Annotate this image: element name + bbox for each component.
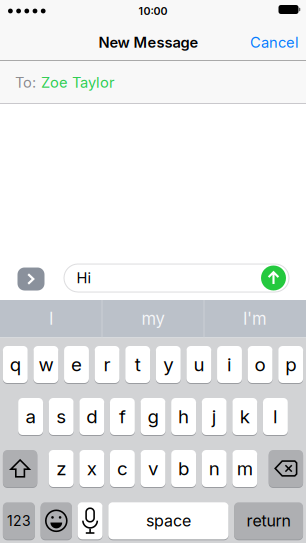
button[interactable] xyxy=(269,450,303,487)
staticText: u xyxy=(193,353,204,376)
staticText: h xyxy=(178,405,189,428)
button[interactable]: v xyxy=(141,450,165,487)
button[interactable]: y xyxy=(156,346,181,383)
button[interactable]: x xyxy=(79,450,104,487)
button[interactable]: f xyxy=(110,398,135,435)
staticText: r xyxy=(104,353,111,376)
button[interactable] xyxy=(78,502,102,539)
staticText: 123 xyxy=(7,512,31,529)
staticText: t xyxy=(135,353,141,376)
button[interactable]: z xyxy=(49,450,74,487)
staticText: I'm xyxy=(243,309,267,329)
button[interactable]: d xyxy=(79,398,104,435)
button[interactable]: h xyxy=(171,398,196,435)
staticText: x xyxy=(87,457,97,480)
staticText: New Message xyxy=(98,34,198,51)
staticText: k xyxy=(240,405,250,428)
button[interactable] xyxy=(17,267,44,290)
button[interactable]: r xyxy=(95,346,120,383)
staticText: e xyxy=(71,353,82,376)
button[interactable] xyxy=(261,265,286,290)
button[interactable]: g xyxy=(141,398,165,435)
button[interactable]: Cancel xyxy=(250,34,299,51)
button[interactable]: e xyxy=(64,346,89,383)
staticText: z xyxy=(56,457,66,480)
staticText: a xyxy=(26,405,36,428)
button[interactable]: b xyxy=(171,450,196,487)
staticText: To: xyxy=(15,74,36,91)
button[interactable]: return xyxy=(234,502,303,539)
staticText: g xyxy=(147,405,158,428)
staticText: v xyxy=(148,457,158,480)
button[interactable]: my xyxy=(103,300,203,337)
button[interactable]: k xyxy=(232,398,257,435)
button[interactable] xyxy=(3,450,37,487)
button[interactable]: j xyxy=(202,398,227,435)
button[interactable]: p xyxy=(278,346,303,383)
button[interactable]: m xyxy=(232,450,257,487)
button[interactable]: s xyxy=(49,398,74,435)
staticText: d xyxy=(86,405,97,428)
button[interactable]: w xyxy=(33,346,58,383)
button[interactable]: n xyxy=(202,450,227,487)
button[interactable]: l xyxy=(263,398,288,435)
staticText: j xyxy=(212,405,217,428)
staticText: i xyxy=(227,353,232,376)
staticText: space xyxy=(146,511,191,530)
button[interactable]: c xyxy=(110,450,135,487)
button[interactable]: i xyxy=(217,346,242,383)
staticText: l xyxy=(273,405,278,428)
button[interactable]: q xyxy=(3,346,28,383)
staticText: o xyxy=(255,353,266,376)
staticText: y xyxy=(163,353,173,376)
button[interactable]: Hi xyxy=(64,264,289,292)
staticText: return xyxy=(247,511,291,530)
button[interactable]: o xyxy=(248,346,273,383)
button[interactable]: I'm xyxy=(205,300,305,337)
button[interactable]: 123 xyxy=(3,502,35,539)
staticText: Hi xyxy=(76,269,91,287)
staticText: c xyxy=(117,457,128,480)
staticText: s xyxy=(56,405,66,428)
button[interactable]: t xyxy=(125,346,150,383)
staticText: b xyxy=(178,457,189,480)
button[interactable]: To: xyxy=(15,61,306,104)
button[interactable]: I xyxy=(1,300,101,337)
staticText: I xyxy=(49,309,53,329)
staticText: n xyxy=(209,457,220,480)
button[interactable]: space xyxy=(108,502,228,539)
button[interactable] xyxy=(41,502,72,539)
staticText: 10:00 xyxy=(138,4,167,17)
staticText: Zoe Taylor xyxy=(41,74,115,91)
staticText: Cancel xyxy=(250,34,299,51)
staticText: m xyxy=(237,457,253,480)
staticText: w xyxy=(38,353,53,376)
button[interactable]: a xyxy=(18,398,43,435)
staticText: f xyxy=(119,405,126,428)
staticText: p xyxy=(285,353,296,376)
staticText: my xyxy=(141,309,164,329)
button[interactable]: u xyxy=(186,346,211,383)
staticText: q xyxy=(10,353,21,376)
